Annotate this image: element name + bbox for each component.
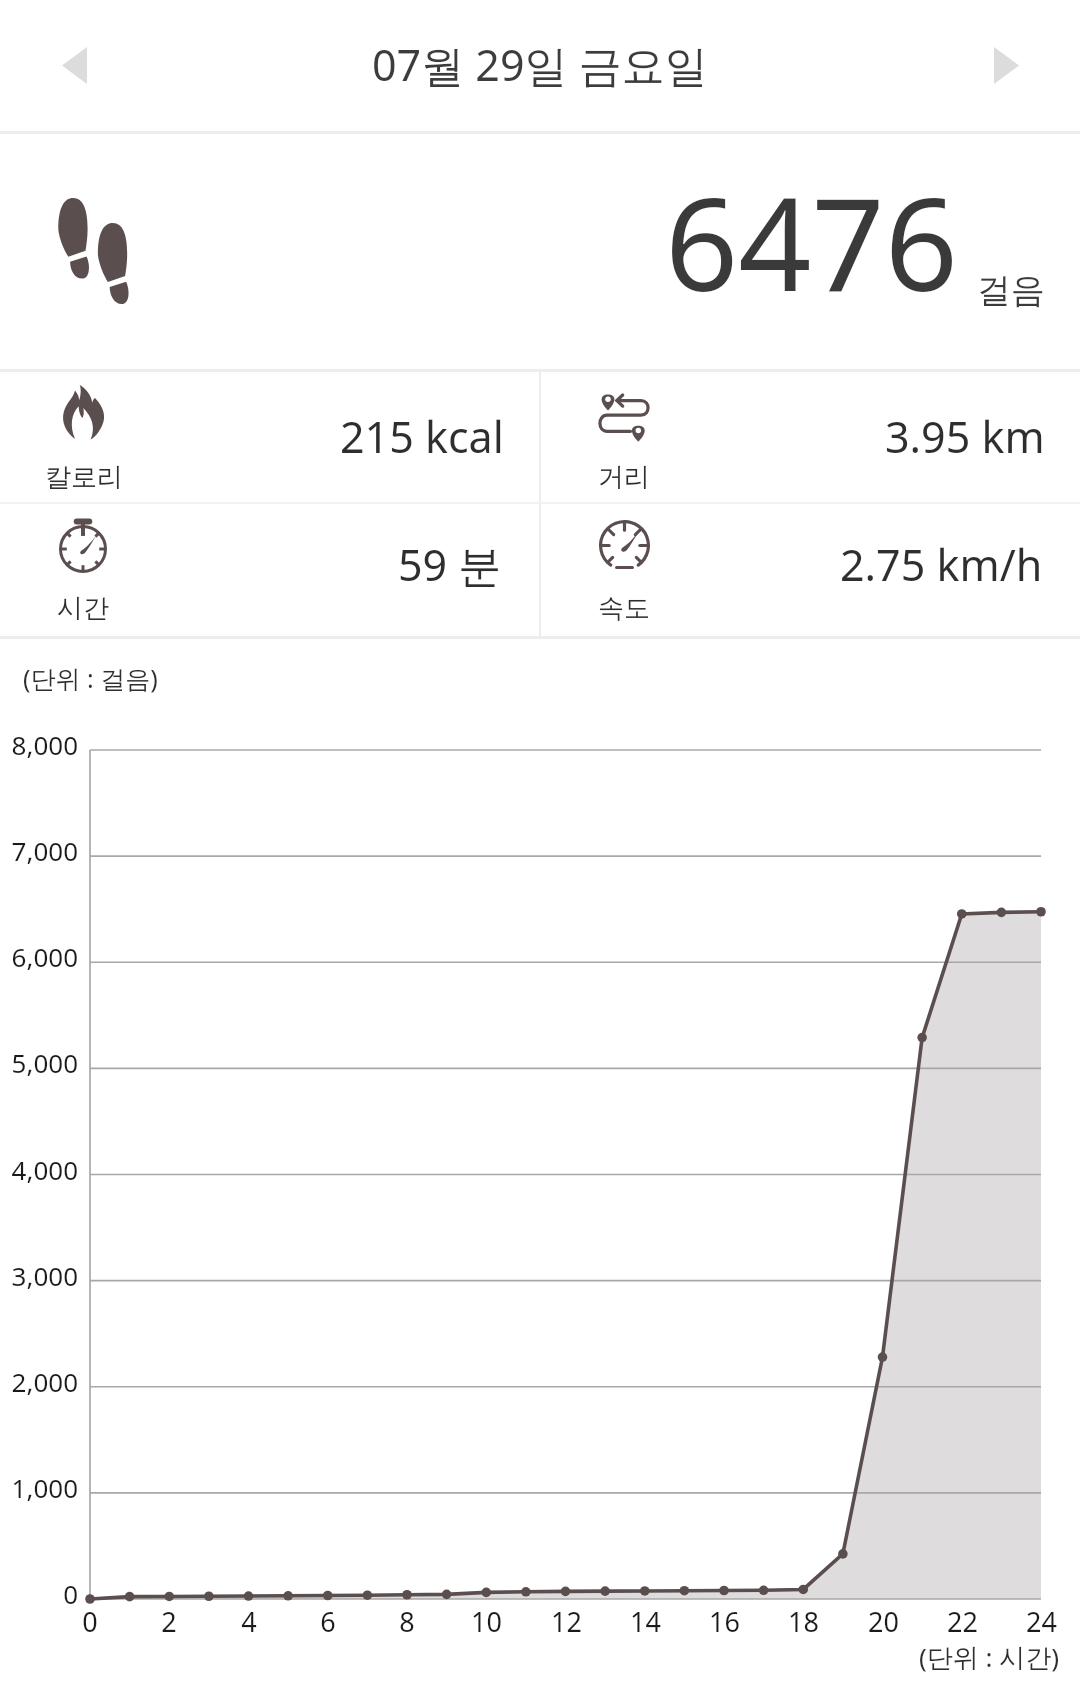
staticText: 0 — [63, 1576, 78, 1611]
staticText: 4,000 — [11, 1152, 78, 1187]
staticText: 16 — [709, 1603, 740, 1640]
staticText: 20 — [868, 1603, 899, 1640]
staticText: 3.95 km — [885, 407, 1045, 466]
staticText: 걸음 — [977, 269, 1045, 312]
staticText: 7,000 — [11, 833, 78, 868]
button[interactable]: 거리 — [541, 372, 1080, 502]
staticText: 3,000 — [11, 1258, 78, 1293]
staticText: 4 — [241, 1603, 257, 1640]
staticText: 07월 29일 금요일 — [372, 35, 708, 94]
staticText: 22 — [947, 1603, 978, 1640]
button[interactable]: 속도 — [541, 504, 1080, 636]
button[interactable]: 6476 — [0, 134, 1080, 369]
staticText: 14 — [630, 1603, 661, 1640]
staticText: 12 — [551, 1603, 582, 1640]
button[interactable]: Previous day — [0, 0, 148, 131]
staticText: 8,000 — [11, 727, 78, 762]
staticText: (단위 : 시간) — [919, 1639, 1060, 1675]
staticText: 6476 — [665, 154, 958, 328]
staticText: 거리 — [598, 461, 650, 494]
button[interactable]: 시간 — [0, 504, 539, 636]
staticText: 24 — [1026, 1603, 1057, 1640]
staticText: 10 — [471, 1603, 502, 1640]
button[interactable]: 칼로리 — [0, 372, 539, 502]
staticText: 1,000 — [11, 1470, 78, 1505]
staticText: 속도 — [598, 592, 650, 625]
staticText: 2 — [161, 1603, 177, 1640]
staticText: 칼로리 — [45, 461, 123, 494]
staticText: 2.75 km/h — [840, 535, 1043, 594]
staticText: 0 — [82, 1603, 98, 1640]
staticText: 5,000 — [11, 1045, 78, 1080]
staticText: (단위 : 걸음) — [23, 661, 158, 695]
staticText: 8 — [399, 1603, 415, 1640]
button[interactable]: Next day — [932, 0, 1080, 131]
staticText: 6,000 — [11, 939, 78, 974]
staticText: 18 — [788, 1603, 819, 1640]
staticText: 2,000 — [11, 1364, 78, 1399]
staticText: 6 — [320, 1603, 336, 1640]
staticText: 59 분 — [398, 535, 502, 594]
staticText: 시간 — [57, 592, 109, 625]
staticText: 215 kcal — [340, 407, 504, 466]
